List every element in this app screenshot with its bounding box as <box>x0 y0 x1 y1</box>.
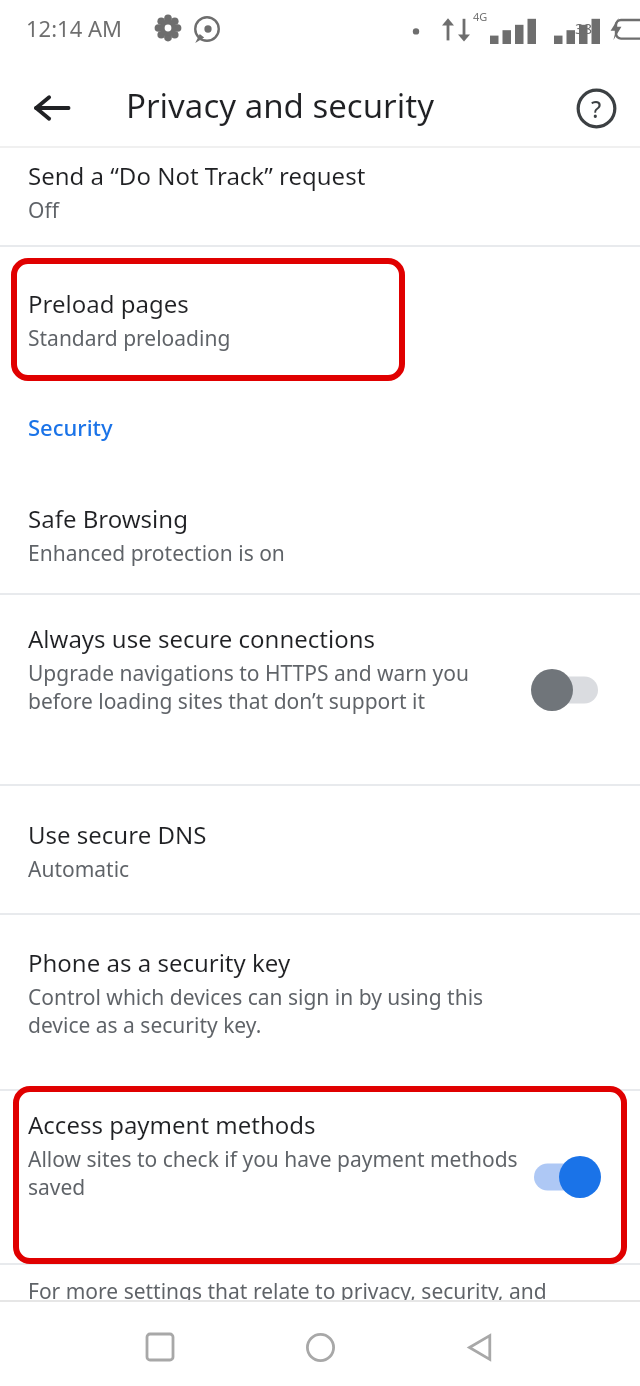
staticText: Access payment methods <box>28 1108 316 1141</box>
button[interactable]: Disabled toggle <box>526 665 610 715</box>
staticText: Preload pages <box>28 287 189 320</box>
staticText: Send a “Do Not Track” request <box>28 159 366 192</box>
button[interactable]: Always use secure connections <box>0 595 640 784</box>
button[interactable]: Safe Browsing <box>0 471 640 593</box>
button[interactable]: Recent apps <box>130 1317 190 1377</box>
staticText: 4G <box>473 9 488 24</box>
staticText: 12:14 AM <box>26 13 122 43</box>
staticText: Allow sites to check if you have payment… <box>28 1145 528 1201</box>
staticText: Privacy and security <box>126 83 434 128</box>
button[interactable]: Use secure DNS <box>0 786 640 913</box>
button[interactable]: Send a “Do Not Track” request <box>0 148 640 245</box>
button[interactable]: Back <box>450 1317 510 1377</box>
staticText: 38 <box>575 18 593 38</box>
staticText: Enhanced protection is on <box>28 539 285 568</box>
staticText: Upgrade navigations to HTTPS and warn yo… <box>28 659 528 715</box>
staticText: Safe Browsing <box>28 502 188 535</box>
button[interactable]: Enabled toggle <box>526 1152 610 1202</box>
staticText: Use secure DNS <box>28 818 207 851</box>
button[interactable]: Preload pages <box>0 247 640 395</box>
staticText: Security <box>28 412 113 442</box>
button[interactable]: Back <box>22 78 82 138</box>
button[interactable]: Help <box>566 78 626 138</box>
staticText: Phone as a security key <box>28 946 291 979</box>
button[interactable]: Phone as a security key <box>0 915 640 1089</box>
staticText: Standard preloading <box>28 324 231 353</box>
staticText: Control which devices can sign in by usi… <box>28 983 528 1039</box>
staticText: Off <box>28 196 59 225</box>
staticText: Always use secure connections <box>28 622 375 655</box>
staticText: ? <box>591 93 602 124</box>
button[interactable]: Access payment methods <box>0 1091 640 1263</box>
staticText: For more settings that relate to privacy… <box>28 1277 547 1306</box>
staticText: Automatic <box>28 855 130 884</box>
button[interactable]: Home <box>290 1317 350 1377</box>
